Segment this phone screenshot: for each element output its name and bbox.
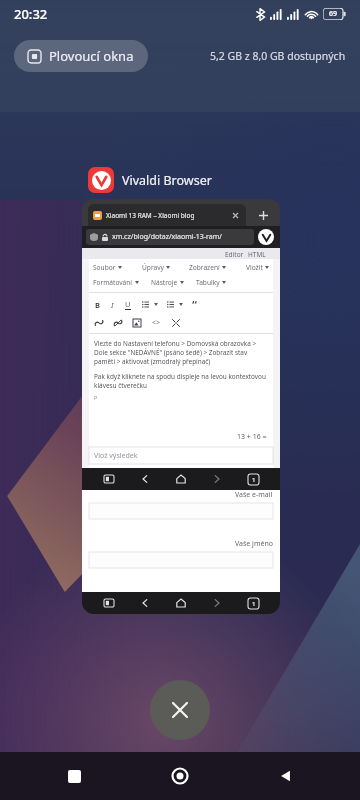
button[interactable]: Xiaomi 13 RAM – Xiaomi blog <box>88 204 246 226</box>
staticText: Nástroje <box>151 278 178 287</box>
staticText: 1 <box>252 600 256 608</box>
staticText: I <box>111 300 114 310</box>
button[interactable]: Panely <box>100 594 118 612</box>
button[interactable] <box>89 503 273 519</box>
button[interactable]: Odkaz <box>95 319 103 327</box>
staticText: B <box>95 300 100 310</box>
staticText: Úpravy <box>142 263 164 272</box>
staticText: Plovoucí okna <box>49 47 134 65</box>
staticText: Vaše e-mail <box>235 490 273 500</box>
staticText: Vložit <box>246 263 263 272</box>
button[interactable]: Úpravy <box>142 263 170 272</box>
button[interactable]: Vpřed <box>208 470 226 488</box>
button[interactable]: Vložit <box>246 263 269 272</box>
staticText: Vlezte do Nastavení telefonu > Domovská … <box>94 339 268 366</box>
staticText: Vlož výsledek <box>94 451 138 461</box>
staticText: xm.cz/blog/dotaz/xiaomi-13-ram/ <box>112 232 250 242</box>
staticText: Vaše jméno <box>235 539 273 549</box>
button[interactable]: Seznam <box>167 301 174 308</box>
button[interactable]: Editor <box>225 250 244 259</box>
button[interactable]: Zpět <box>136 594 154 612</box>
button[interactable]: B <box>95 300 100 310</box>
staticText: P <box>94 394 98 401</box>
staticText: Vivaldi Browser <box>122 172 212 189</box>
button[interactable]: Vlož výsledek <box>89 447 273 464</box>
button[interactable]: Zavřít panel <box>232 212 239 219</box>
button[interactable]: Celá obrazovka <box>172 319 180 327</box>
button[interactable]: Panely <box>100 470 118 488</box>
staticText: Formátování <box>93 278 133 287</box>
button[interactable]: Domů <box>172 470 190 488</box>
staticText: Tabulky <box>196 278 220 287</box>
button[interactable]: Nový panel <box>246 204 280 226</box>
staticText: 69 <box>329 9 338 19</box>
button[interactable]: Seznam <box>142 301 149 308</box>
staticText: 13 + 16 = <box>237 432 267 442</box>
button[interactable]: I <box>111 300 114 310</box>
button[interactable]: Tabulky <box>196 278 226 287</box>
staticText: Pak když kliknete na spodu displeje na l… <box>94 372 268 390</box>
staticText: Zobrazení <box>189 263 220 272</box>
button[interactable]: HTML <box>248 250 266 259</box>
button[interactable]: U <box>125 299 131 310</box>
staticText: <> <box>152 318 161 328</box>
button[interactable]: Vpřed <box>208 594 226 612</box>
staticText: U <box>125 299 131 309</box>
staticText: “ <box>192 297 197 312</box>
staticText: Xiaomi 13 RAM – Xiaomi blog <box>106 211 229 220</box>
button[interactable]: Zpět <box>136 470 154 488</box>
button[interactable]: Domů <box>158 754 202 798</box>
button[interactable]: Soubor <box>93 263 122 272</box>
button[interactable]: Nabídka Vivaldi <box>258 229 274 245</box>
button[interactable]: Zavřít vše <box>150 680 210 740</box>
staticText: Editor <box>225 250 244 259</box>
button[interactable]: Plovoucí okna <box>14 40 148 72</box>
staticText: Soubor <box>93 263 116 272</box>
button[interactable]: Domů <box>172 594 190 612</box>
button[interactable]: Přehled <box>52 754 96 798</box>
button[interactable]: Xiaomi 13 RAM – Xiaomi blog <box>82 199 280 614</box>
button[interactable]: xm.cz/blog/dotaz/xiaomi-13-ram/ <box>86 229 254 245</box>
staticText: 1 <box>252 476 256 484</box>
button[interactable]: Odebrat odkaz <box>114 319 122 327</box>
button[interactable]: Zobrazení <box>189 263 226 272</box>
button[interactable]: Formátování <box>93 278 139 287</box>
button[interactable]: Počet panelů <box>244 594 262 612</box>
staticText: 20:32 <box>14 5 48 23</box>
staticText: 5,2 GB z 8,0 GB dostupných <box>210 49 346 63</box>
button[interactable]: Zpět <box>264 754 308 798</box>
button[interactable]: Nástroje <box>151 278 184 287</box>
button[interactable] <box>89 552 273 568</box>
button[interactable]: Obrázek <box>133 319 141 327</box>
button[interactable]: Počet panelů <box>244 470 262 488</box>
staticText: HTML <box>248 250 266 259</box>
